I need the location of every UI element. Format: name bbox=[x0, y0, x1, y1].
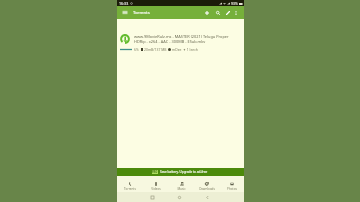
staticText: mDee bbox=[172, 47, 182, 52]
staticText: PRO bbox=[152, 170, 158, 174]
button[interactable]: Home bbox=[175, 193, 183, 201]
staticText: Torrents bbox=[124, 187, 136, 191]
button[interactable]: PRO bbox=[117, 168, 244, 176]
button[interactable]: Photos bbox=[219, 176, 244, 192]
button[interactable]: Open navigation drawer bbox=[120, 8, 129, 17]
staticText: Downloads bbox=[199, 187, 215, 191]
button[interactable]: Search bbox=[213, 6, 222, 19]
staticText: ✦ 1 leech bbox=[183, 47, 198, 52]
button[interactable]: Videos bbox=[143, 176, 169, 192]
staticText: Music bbox=[177, 187, 186, 191]
button[interactable]: More options bbox=[231, 6, 240, 19]
button[interactable]: Music bbox=[169, 176, 194, 192]
button[interactable]: Edit bbox=[223, 6, 232, 19]
button[interactable]: Torrents bbox=[117, 176, 143, 192]
button[interactable]: Back bbox=[203, 193, 211, 201]
staticText: 20mB/137 MB bbox=[144, 47, 167, 52]
button[interactable]: Recents bbox=[148, 193, 156, 201]
staticText: www.9MovieRulz.ms - MASTER (2021) Telugu… bbox=[134, 34, 237, 44]
staticText: Videos bbox=[151, 187, 161, 191]
staticText: 6% bbox=[134, 47, 139, 52]
staticText: Photos bbox=[227, 187, 237, 191]
staticText: Torrents bbox=[133, 10, 150, 16]
button[interactable]: www.9MovieRulz.ms - MASTER (2021) Telugu… bbox=[117, 19, 244, 51]
button[interactable]: Downloads bbox=[194, 176, 219, 192]
button[interactable]: Add torrent bbox=[202, 6, 211, 19]
staticText: 93% bbox=[231, 1, 238, 6]
staticText: 16:33 bbox=[119, 1, 129, 6]
staticText: Save battery. Upgrade to ad-free bbox=[160, 170, 208, 174]
